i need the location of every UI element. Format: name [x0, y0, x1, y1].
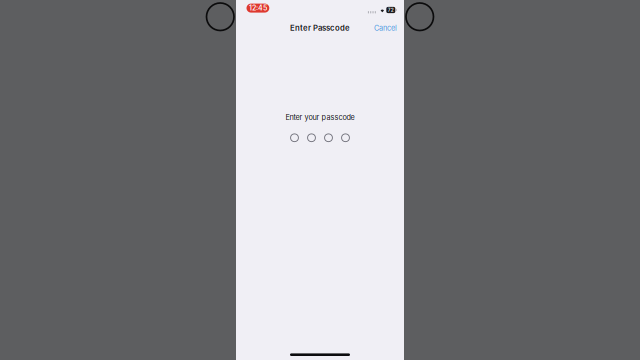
staticText: Enter Passcode: [290, 23, 350, 33]
staticText: 12:45: [249, 4, 267, 12]
staticText: 72: [388, 7, 394, 13]
button[interactable]: Enter your passcode: [269, 109, 370, 146]
staticText: Cancel: [374, 24, 397, 32]
staticText: Enter your passcode: [285, 113, 354, 122]
button[interactable]: Cancel: [371, 20, 400, 36]
